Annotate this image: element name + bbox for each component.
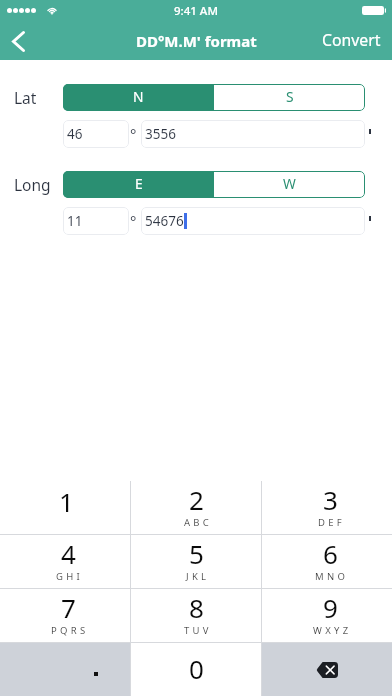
staticText: 9:41 AM — [174, 3, 218, 19]
other: Delete — [316, 662, 338, 678]
staticText: 46 — [67, 125, 83, 143]
button[interactable]: 54676 — [141, 207, 365, 235]
button[interactable]: 1 — [0, 481, 130, 534]
staticText: JKL — [186, 570, 210, 583]
staticText: E — [135, 174, 143, 193]
button[interactable]: N — [63, 84, 214, 111]
button[interactable]: Convert — [310, 22, 392, 60]
staticText: 7 — [61, 590, 76, 625]
button[interactable]: 3 — [262, 481, 392, 534]
staticText: 4 — [61, 536, 76, 571]
staticText: 8 — [189, 590, 204, 625]
button[interactable]: 11 — [63, 207, 129, 235]
button[interactable]: 7 — [0, 589, 130, 642]
staticText: N — [133, 87, 144, 106]
staticText: 3 — [323, 482, 338, 517]
staticText: 6 — [323, 536, 338, 571]
staticText: Convert — [322, 29, 381, 51]
staticText: PQRS — [51, 624, 89, 637]
button[interactable]: 0 — [131, 643, 261, 696]
staticText: 54676 — [145, 212, 184, 230]
button[interactable]: Back — [0, 22, 36, 60]
button[interactable]: 5 — [131, 535, 261, 588]
staticText: S — [286, 87, 294, 106]
staticText: 5 — [189, 536, 204, 571]
button[interactable]: 4 — [0, 535, 130, 588]
staticText: TUV — [184, 624, 212, 637]
button[interactable]: 2 — [131, 481, 261, 534]
button[interactable]: 9 — [262, 589, 392, 642]
staticText: Lat — [14, 87, 37, 108]
staticText: ° — [130, 124, 137, 144]
button[interactable]: 8 — [131, 589, 261, 642]
button[interactable]: Delete — [262, 643, 392, 696]
staticText: 0 — [189, 651, 204, 686]
staticText: 3556 — [145, 125, 176, 143]
button[interactable]: 46 — [63, 120, 129, 148]
staticText: DEF — [318, 516, 346, 529]
button[interactable]: W — [214, 171, 365, 198]
staticText: W — [283, 174, 296, 193]
button[interactable]: S — [214, 84, 365, 111]
staticText: 11 — [67, 212, 83, 230]
staticText: ABC — [184, 516, 213, 529]
staticText: MNO — [315, 570, 349, 583]
staticText: 9 — [323, 590, 338, 625]
button[interactable]: 6 — [262, 535, 392, 588]
staticText: 2 — [189, 482, 204, 517]
staticText: 1 — [59, 484, 74, 519]
staticText: Long — [14, 174, 51, 195]
staticText: GHI — [56, 570, 84, 583]
staticText: WXYZ — [313, 624, 352, 637]
staticText: ° — [130, 211, 137, 231]
staticText: DD°M.M' format — [136, 31, 257, 51]
button[interactable]: 3556 — [141, 120, 365, 148]
button[interactable] — [0, 643, 130, 696]
button[interactable]: E — [63, 171, 214, 198]
